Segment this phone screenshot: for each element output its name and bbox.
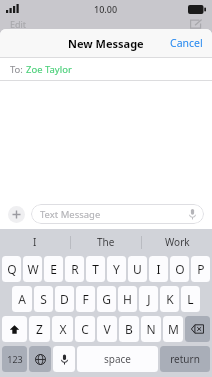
staticText: J bbox=[147, 291, 151, 307]
button[interactable]: B bbox=[119, 316, 139, 342]
staticText: Zoe Taylor bbox=[26, 63, 72, 76]
staticText: I bbox=[156, 261, 161, 277]
staticText: Text Message bbox=[40, 208, 101, 221]
staticText: F bbox=[82, 291, 89, 307]
staticText: Work bbox=[165, 235, 190, 249]
button[interactable]: M bbox=[163, 316, 183, 342]
button[interactable]: J bbox=[139, 286, 158, 312]
staticText: Z bbox=[36, 321, 43, 337]
staticText: The bbox=[97, 235, 115, 249]
button[interactable]: Text Message bbox=[31, 204, 204, 224]
button[interactable]: K bbox=[160, 286, 179, 312]
staticText: Q bbox=[7, 261, 17, 277]
other: Dictate bbox=[189, 209, 196, 220]
staticText: C bbox=[81, 321, 89, 337]
button[interactable]: P bbox=[191, 256, 210, 282]
button[interactable]: T bbox=[86, 256, 105, 282]
button[interactable]: Shift bbox=[2, 316, 27, 342]
button[interactable]: Cancel bbox=[161, 31, 212, 55]
button[interactable]: return bbox=[160, 346, 210, 372]
button[interactable]: S bbox=[34, 286, 53, 312]
staticText: New Message bbox=[68, 36, 144, 51]
button[interactable]: Z bbox=[29, 316, 50, 342]
button[interactable]: X bbox=[52, 316, 73, 342]
button[interactable]: Add attachment bbox=[8, 206, 25, 223]
staticText: Y bbox=[113, 261, 120, 277]
button[interactable]: space bbox=[77, 346, 158, 372]
staticText: space bbox=[104, 352, 131, 366]
staticText: V bbox=[103, 321, 111, 337]
button[interactable]: Y bbox=[107, 256, 126, 282]
staticText: N bbox=[146, 321, 156, 337]
button[interactable]: Backspace bbox=[185, 316, 210, 342]
button[interactable]: H bbox=[118, 286, 137, 312]
button[interactable]: W bbox=[23, 256, 42, 282]
button[interactable]: I bbox=[0, 229, 70, 255]
staticText: R bbox=[71, 261, 79, 277]
button[interactable]: 123 bbox=[2, 346, 27, 372]
button[interactable]: C bbox=[75, 316, 95, 342]
staticText: 123 bbox=[7, 353, 23, 365]
staticText: M bbox=[168, 321, 179, 337]
button[interactable]: Switch keyboard bbox=[29, 346, 51, 372]
staticText: B bbox=[125, 321, 133, 337]
staticText: T bbox=[92, 261, 99, 277]
staticText: K bbox=[166, 291, 174, 307]
staticText: A bbox=[18, 291, 26, 307]
staticText: 10.00 bbox=[94, 3, 118, 15]
button[interactable]: D bbox=[55, 286, 74, 312]
button[interactable]: E bbox=[44, 256, 63, 282]
button[interactable]: Dictation bbox=[53, 346, 75, 372]
button[interactable]: Work bbox=[142, 229, 212, 255]
staticText: I bbox=[33, 235, 37, 249]
button[interactable]: L bbox=[181, 286, 200, 312]
button[interactable]: N bbox=[141, 316, 161, 342]
button[interactable]: V bbox=[97, 316, 117, 342]
button[interactable]: O bbox=[170, 256, 189, 282]
staticText: U bbox=[133, 261, 142, 277]
staticText: H bbox=[123, 291, 132, 307]
staticText: W bbox=[27, 261, 39, 277]
staticText: Cancel bbox=[170, 36, 203, 50]
button[interactable]: The bbox=[71, 229, 141, 255]
button[interactable]: Q bbox=[2, 256, 21, 282]
button[interactable]: R bbox=[65, 256, 84, 282]
staticText: P bbox=[197, 261, 205, 277]
button[interactable]: To: bbox=[0, 58, 212, 80]
staticText: X bbox=[59, 321, 67, 337]
staticText: To: bbox=[10, 63, 26, 76]
button[interactable]: I bbox=[149, 256, 168, 282]
staticText: Edit bbox=[10, 18, 27, 29]
button[interactable]: U bbox=[128, 256, 147, 282]
staticText: S bbox=[40, 291, 47, 307]
button[interactable]: G bbox=[97, 286, 116, 312]
button[interactable]: A bbox=[12, 286, 32, 312]
staticText: G bbox=[102, 291, 111, 307]
staticText: O bbox=[175, 261, 185, 277]
staticText: E bbox=[50, 261, 57, 277]
button[interactable]: F bbox=[76, 286, 95, 312]
staticText: D bbox=[60, 291, 69, 307]
staticText: return bbox=[170, 352, 200, 366]
staticText: L bbox=[187, 291, 194, 307]
